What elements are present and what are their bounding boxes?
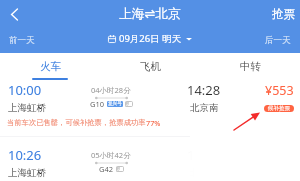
staticText: 77% bbox=[146, 118, 161, 128]
button[interactable]: 10:00 bbox=[0, 79, 300, 134]
staticText: 10:26 bbox=[8, 146, 42, 164]
button[interactable]: Back bbox=[3, 4, 25, 24]
staticText: 北京南 bbox=[190, 102, 219, 114]
button[interactable]: 候补抢票 bbox=[268, 105, 290, 112]
staticText: 上海虹桥 bbox=[8, 167, 46, 179]
button[interactable]: 后一天 bbox=[258, 32, 298, 48]
staticText: 飞机 bbox=[140, 60, 161, 73]
staticText: 前一天 bbox=[9, 35, 35, 46]
staticText: 火车 bbox=[40, 60, 61, 73]
staticText: 05小时42分 bbox=[91, 150, 131, 160]
staticText: 候补抢票 bbox=[268, 105, 290, 112]
staticText: 10:00 bbox=[8, 81, 42, 99]
staticText: 09月26日 明天 bbox=[119, 32, 182, 45]
staticText: 中转 bbox=[240, 60, 261, 73]
staticText: 上海虹桥 bbox=[8, 102, 46, 114]
staticText: 后一天 bbox=[265, 35, 291, 46]
staticText: 智能 bbox=[116, 166, 124, 172]
button[interactable]: 中转 bbox=[200, 53, 300, 80]
staticText: 当前车次已售罄，可候补抢票，抢票成功率 bbox=[7, 118, 146, 127]
staticText: 上海⇌北京 bbox=[119, 6, 181, 22]
staticText: 04小时28分 bbox=[91, 85, 131, 95]
staticText: 智能 bbox=[125, 101, 133, 107]
staticText: G42 bbox=[99, 164, 114, 173]
button[interactable]: 前一天 bbox=[2, 32, 42, 48]
button[interactable]: 飞机 bbox=[100, 53, 200, 80]
button[interactable]: 火车 bbox=[0, 53, 100, 80]
button[interactable]: 抢票 bbox=[268, 5, 300, 23]
staticText: 抢票 bbox=[272, 7, 296, 22]
button[interactable]: 10:26 bbox=[0, 144, 300, 181]
staticText: 14:28 bbox=[187, 81, 221, 99]
staticText: G10 bbox=[90, 99, 105, 108]
staticText: 复兴号 bbox=[108, 101, 122, 107]
staticText: ¥553 bbox=[265, 82, 294, 99]
button[interactable]: 09月26日 明天 bbox=[108, 32, 192, 45]
